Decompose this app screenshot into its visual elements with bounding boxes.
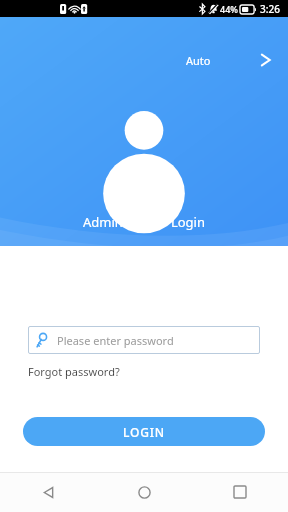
button[interactable]: Please enter password	[28, 326, 260, 354]
button[interactable]: Forgot password?	[28, 364, 120, 379]
staticText: 44%	[220, 3, 238, 15]
staticText: Auto	[186, 53, 211, 68]
button[interactable]: LOGIN	[23, 417, 265, 446]
staticText: 3:26	[260, 2, 280, 16]
staticText: Administrator Login	[0, 213, 288, 231]
button[interactable]: Auto	[180, 47, 278, 73]
button[interactable]: Recents	[192, 472, 288, 512]
staticText: LOGIN	[123, 424, 165, 440]
button[interactable]: Home	[96, 472, 192, 512]
button[interactable]: Back	[0, 472, 96, 512]
staticText: Please enter password	[57, 333, 174, 348]
other: Next	[259, 51, 272, 69]
